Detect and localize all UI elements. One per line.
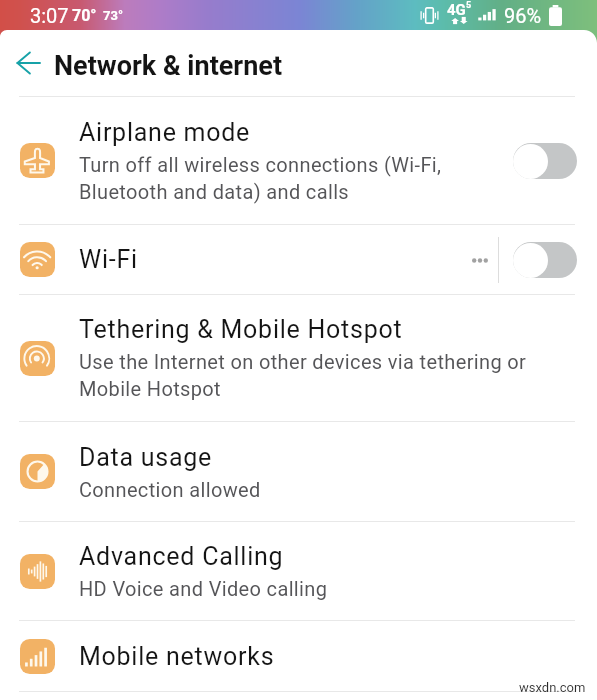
button[interactable]: Mobile networks xyxy=(0,621,597,691)
button[interactable]: Advanced Calling xyxy=(0,522,597,620)
button[interactable]: Tethering & Mobile Hotspot xyxy=(0,295,597,421)
staticText: Tethering & Mobile Hotspot xyxy=(79,315,403,344)
staticText: 3:07 xyxy=(30,4,69,27)
staticText: Airplane mode xyxy=(79,118,251,147)
staticText: Use the Internet on other devices via te… xyxy=(79,350,527,401)
staticText: HD Voice and Video calling xyxy=(79,577,328,600)
button[interactable]: More options xyxy=(448,238,492,282)
staticText: Wi-Fi xyxy=(79,245,138,274)
button[interactable]: Data usage xyxy=(0,422,597,521)
staticText: wsxdn.com xyxy=(519,680,586,695)
staticText: 5 xyxy=(466,0,472,11)
staticText: 70° xyxy=(72,6,97,25)
button[interactable]: Toggle xyxy=(513,242,577,278)
button[interactable]: Toggle xyxy=(513,143,577,179)
staticText: 4G xyxy=(447,1,466,19)
staticText: 73° xyxy=(103,8,123,23)
staticText: Advanced Calling xyxy=(79,542,284,571)
staticText: 96% xyxy=(504,4,542,27)
button[interactable]: Wi-Fi xyxy=(0,225,597,294)
staticText: Connection allowed xyxy=(79,478,261,501)
staticText: Turn off all wireless connections (Wi-Fi… xyxy=(79,153,442,204)
staticText: Network & internet xyxy=(54,50,283,82)
staticText: Data usage xyxy=(79,443,213,472)
button[interactable]: Airplane mode xyxy=(0,97,597,224)
button[interactable]: Back xyxy=(6,41,50,85)
staticText: Mobile networks xyxy=(79,642,275,671)
